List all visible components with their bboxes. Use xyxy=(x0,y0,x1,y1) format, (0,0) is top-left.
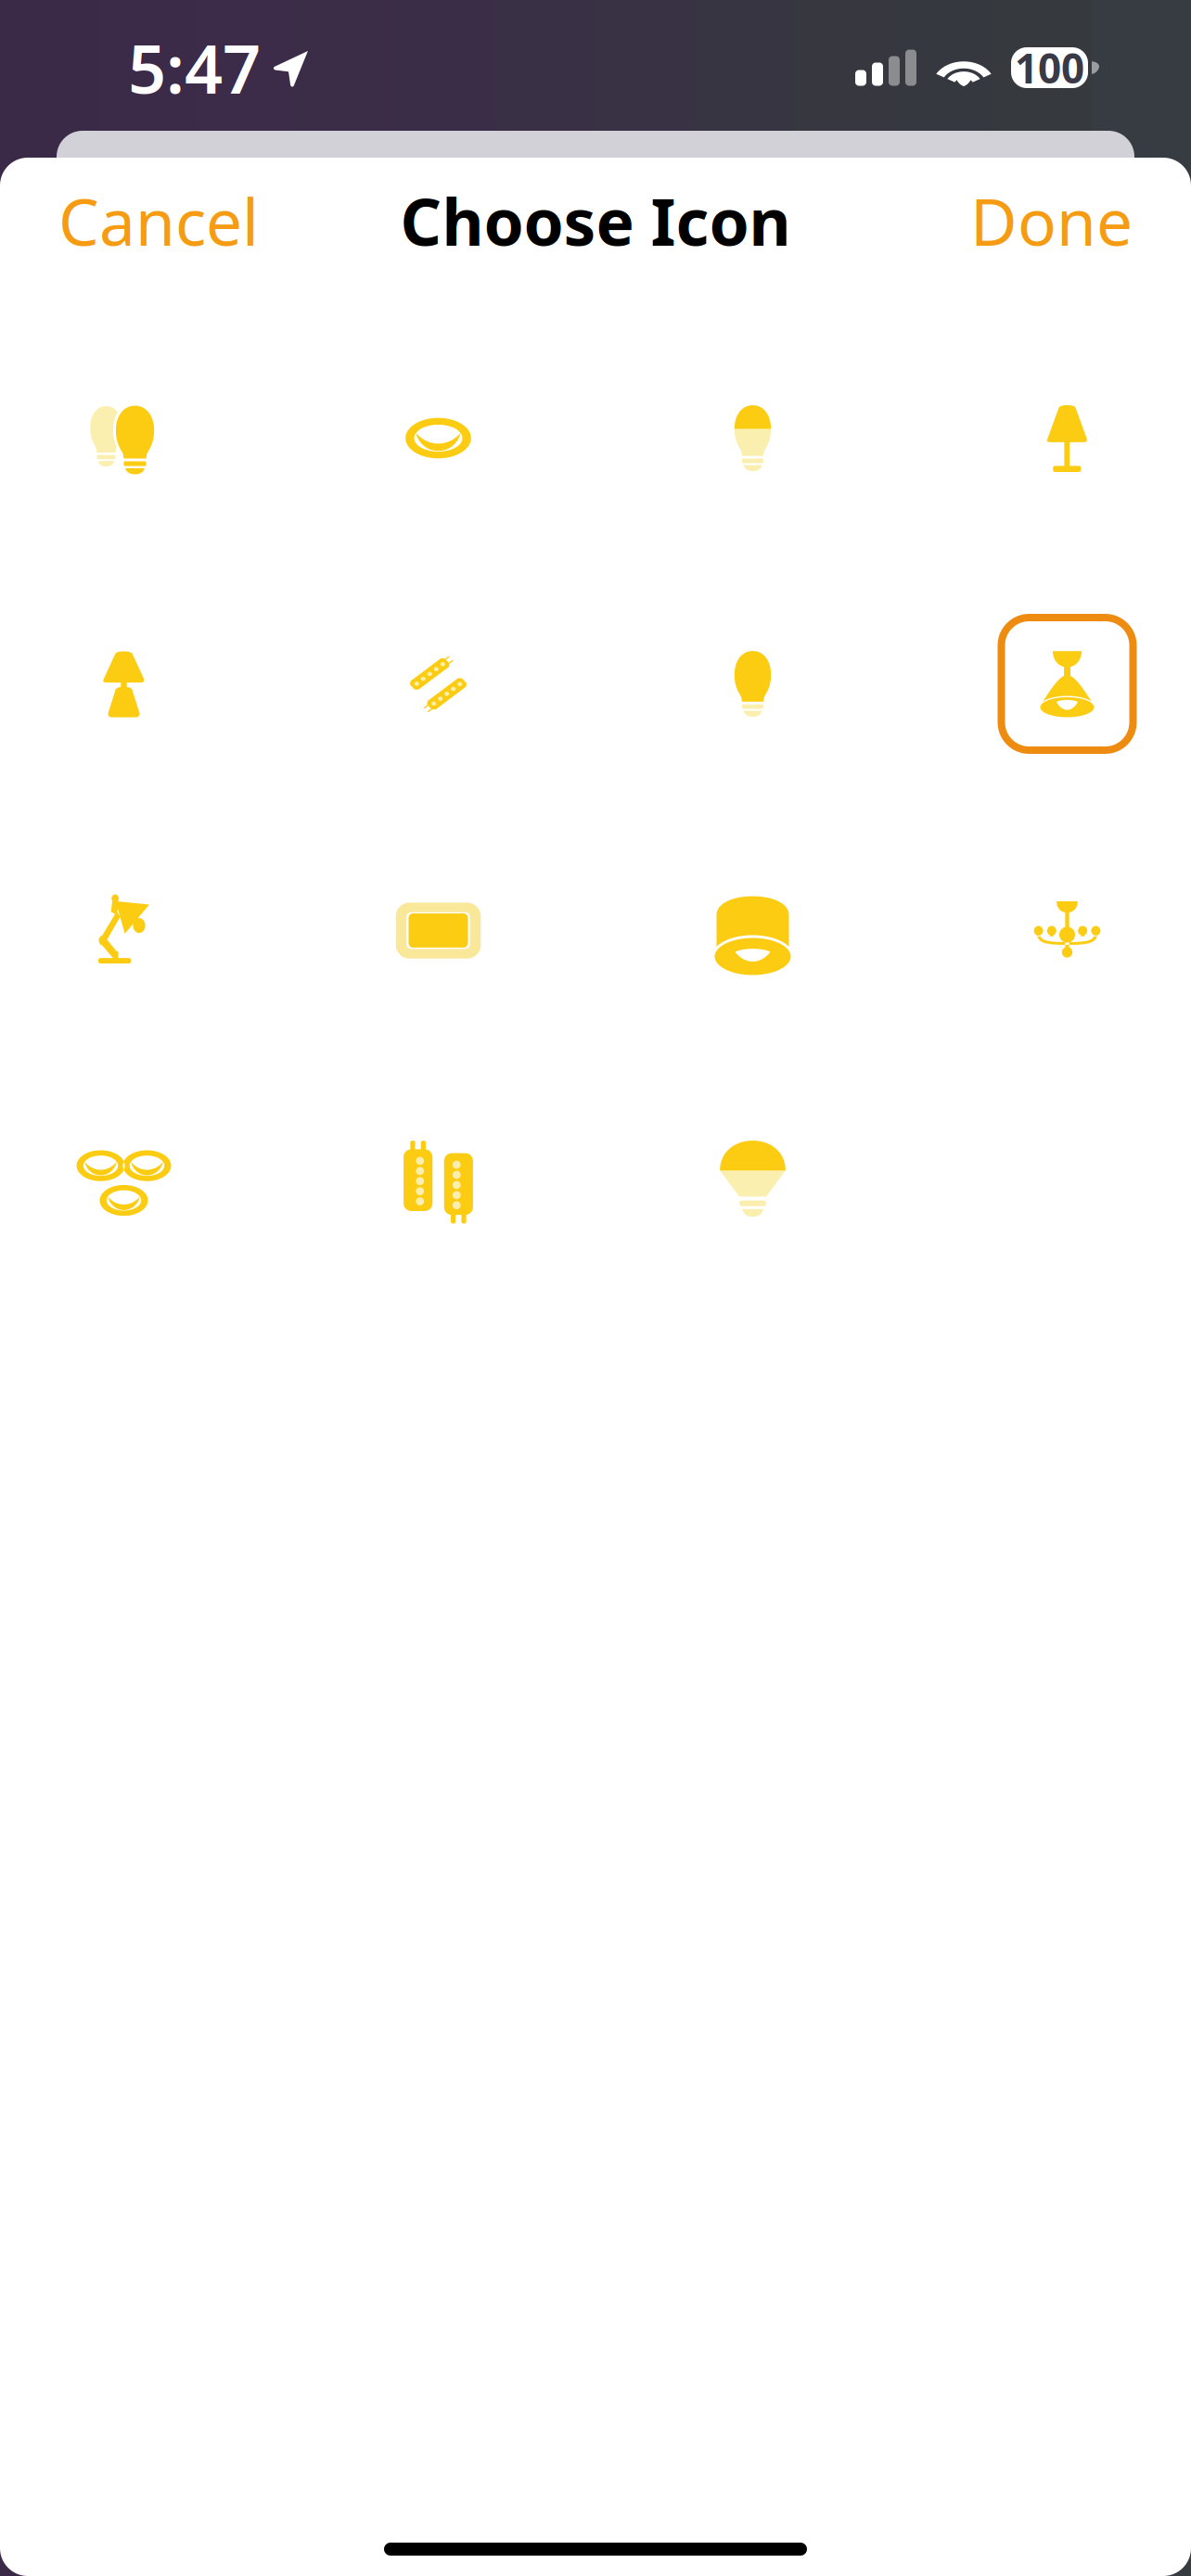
button[interactable]: Desk lamp xyxy=(40,807,207,1052)
staticText: 100 xyxy=(1015,41,1084,95)
button[interactable]: Table lamp xyxy=(40,561,207,807)
staticText: Cancel xyxy=(58,178,259,263)
button[interactable]: Ceiling light xyxy=(669,807,836,1052)
staticText: Done xyxy=(970,178,1133,263)
button[interactable]: Light panel xyxy=(355,807,522,1052)
button[interactable]: Recessed light xyxy=(355,315,522,561)
button[interactable]: Cancel xyxy=(53,158,264,284)
button[interactable]: Pendant light xyxy=(984,561,1151,807)
button[interactable]: Bulb xyxy=(669,561,836,807)
button[interactable]: Flood bulb xyxy=(669,1052,836,1298)
button[interactable]: Done xyxy=(965,158,1138,284)
button[interactable]: Recessed lights xyxy=(40,1052,207,1298)
staticText: 5:47 xyxy=(128,23,261,112)
button[interactable]: Two bulbs xyxy=(40,315,207,561)
button[interactable]: Chandelier xyxy=(984,807,1151,1052)
button[interactable]: Tubes xyxy=(355,1052,522,1298)
staticText: Choose Icon xyxy=(400,178,791,263)
button[interactable]: Dimmed bulb xyxy=(669,315,836,561)
button[interactable]: Floor lamp xyxy=(984,315,1151,561)
button[interactable]: Light strip xyxy=(355,561,522,807)
